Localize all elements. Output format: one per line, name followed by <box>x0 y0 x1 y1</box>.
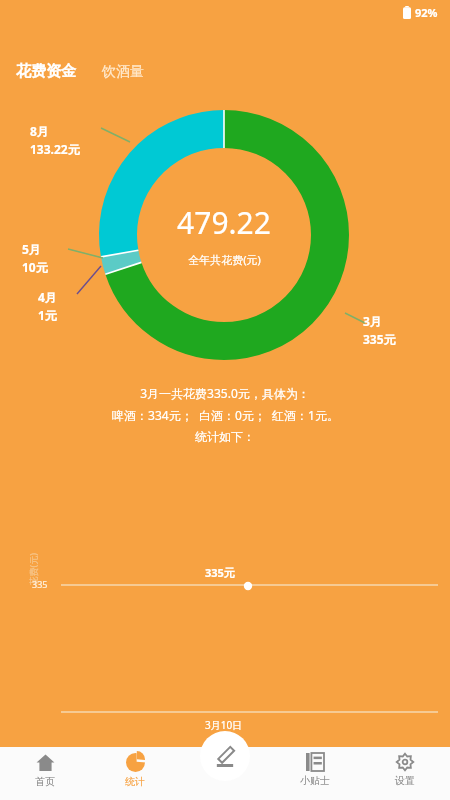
staticText: 10元 <box>22 259 48 275</box>
staticText: 设置 <box>395 774 415 787</box>
button[interactable]: 设置 <box>360 747 450 800</box>
staticText: 全年共花费(元) <box>188 252 261 267</box>
staticText: 479.22 <box>177 202 271 243</box>
staticText: 统计如下： <box>195 429 255 444</box>
staticText: 8月 <box>30 123 49 139</box>
staticText: 首页 <box>35 775 55 788</box>
staticText: 4月 <box>38 289 57 305</box>
button[interactable]: 花费资金 <box>14 60 78 83</box>
staticText: 3月10日 <box>205 718 243 732</box>
staticText: 335元 <box>363 331 396 347</box>
staticText: 335 <box>32 578 48 590</box>
staticText: 1元 <box>38 307 57 323</box>
staticText: 统计 <box>125 775 145 788</box>
staticText: 花费资金 <box>16 62 76 81</box>
staticText: 3月 <box>363 313 382 329</box>
staticText: 3月一共花费335.0元，具体为： <box>140 385 310 401</box>
button[interactable]: 统计 <box>90 747 180 800</box>
button[interactable]: Add record <box>200 731 250 781</box>
staticText: 92% <box>415 5 438 20</box>
button[interactable]: 首页 <box>0 747 90 800</box>
staticText: 花费(元) <box>26 552 38 585</box>
staticText: 小贴士 <box>300 774 330 787</box>
staticText: 啤酒：334元； 白酒：0元； 红酒：1元。 <box>112 407 339 423</box>
button[interactable]: 饮酒量 <box>100 61 146 83</box>
button[interactable]: 小贴士 <box>270 747 360 800</box>
staticText: 5月 <box>22 241 41 257</box>
staticText: 335元 <box>205 565 235 580</box>
staticText: 饮酒量 <box>102 63 144 81</box>
staticText: 133.22元 <box>30 141 80 157</box>
